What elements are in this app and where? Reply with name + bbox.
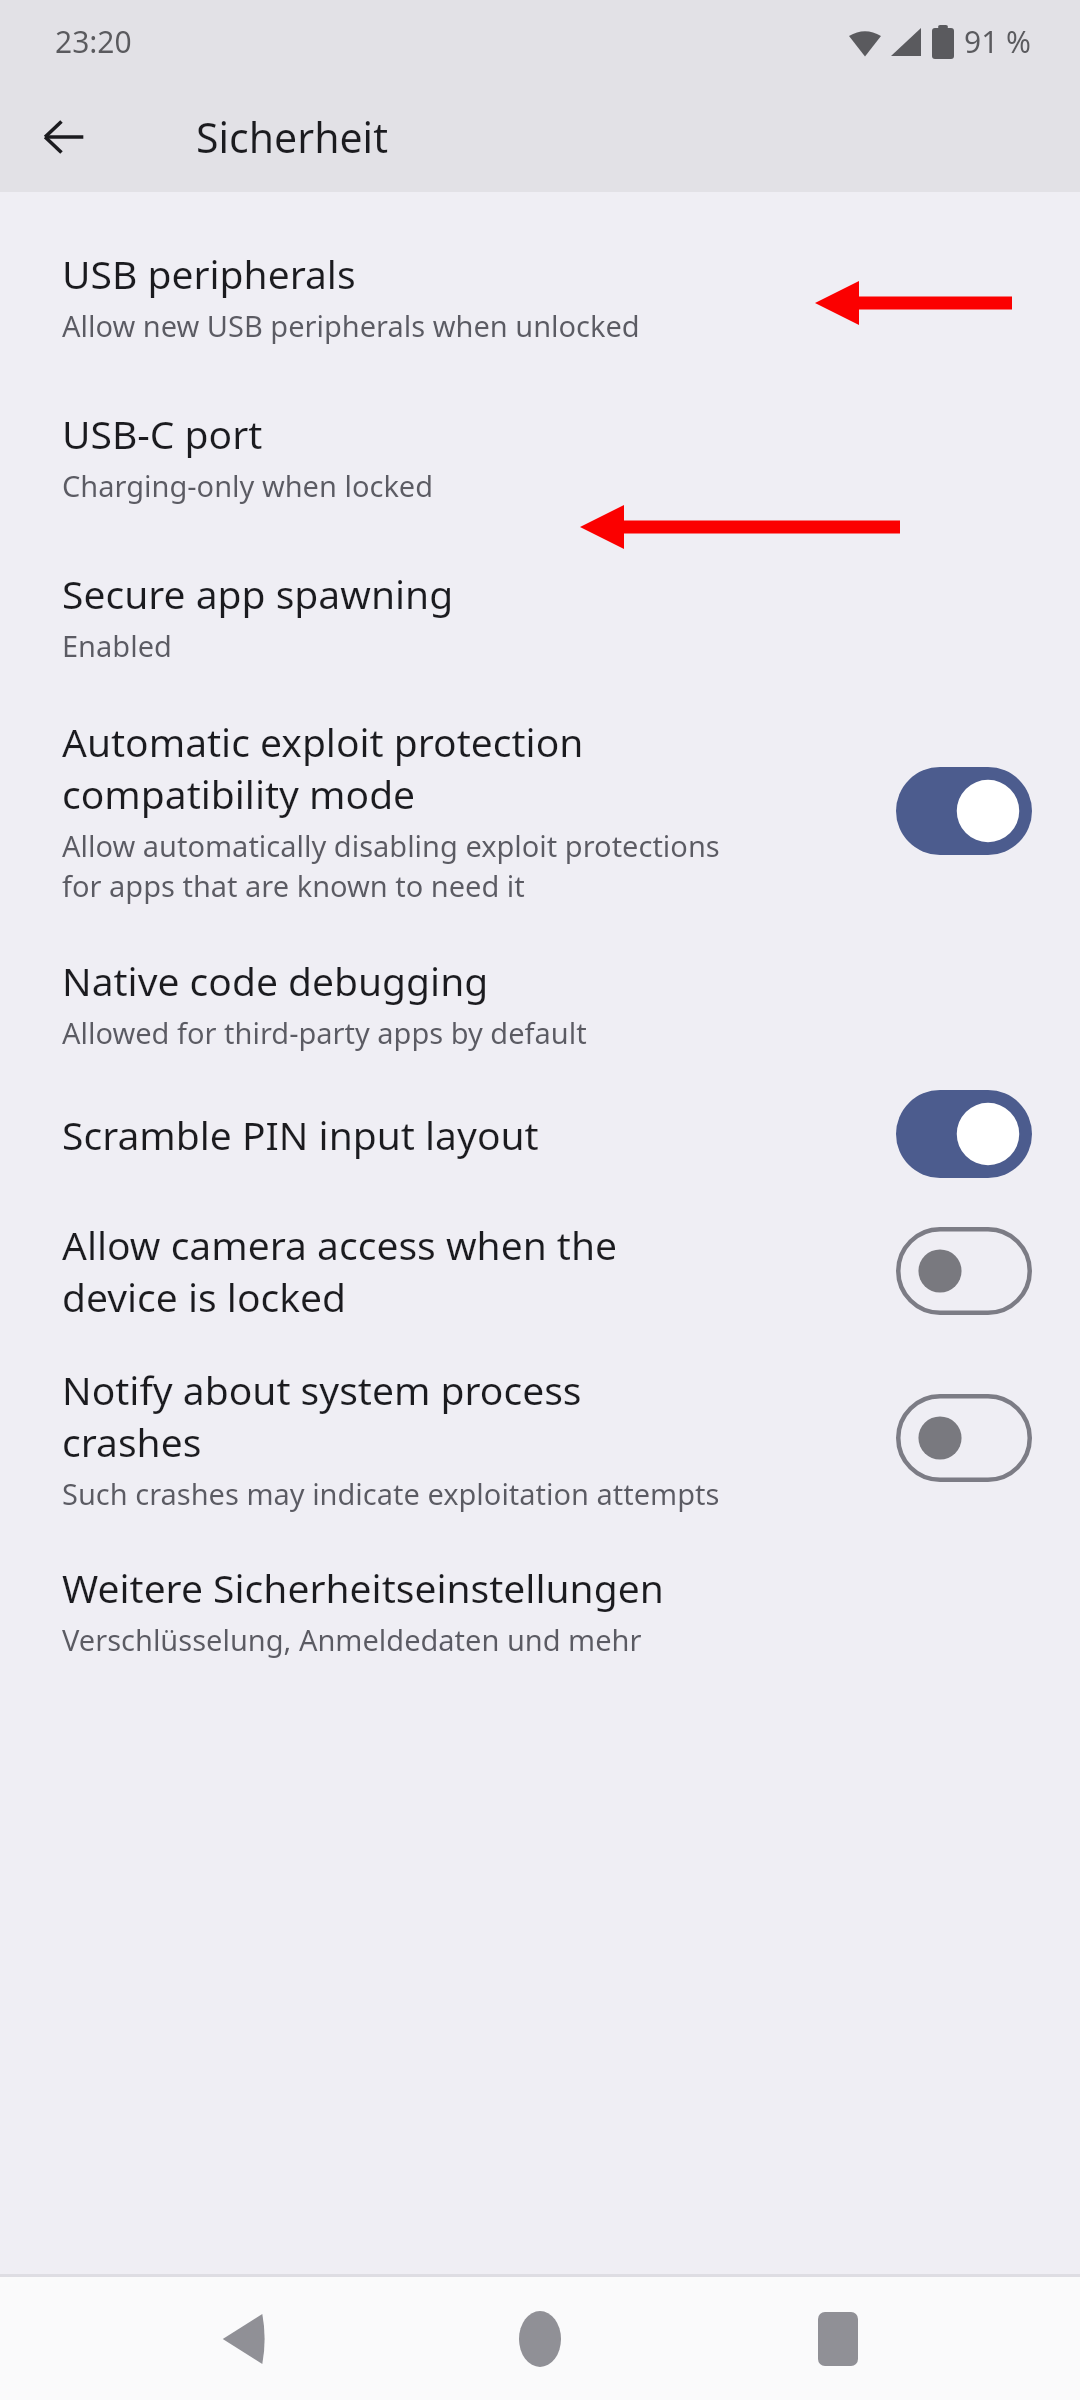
button[interactable]: Scramble PIN input layout: [0, 1052, 1080, 1178]
staticText: Allowed for third-party apps by default: [62, 1013, 587, 1052]
button[interactable]: USB-C port: [0, 345, 1080, 505]
button[interactable]: USB peripherals: [0, 192, 1080, 345]
staticText: Sicherheit: [196, 109, 389, 165]
staticText: Verschlüsselung, Anmeldedaten und mehr: [62, 1620, 642, 1659]
button[interactable]: Notify about system process crashes: [0, 1323, 1080, 1513]
staticText: Notify about system process crashes: [62, 1363, 718, 1468]
button[interactable]: Switch off: [896, 1227, 1032, 1315]
button[interactable]: Weitere Sicherheitseinstellungen: [0, 1513, 1080, 1659]
staticText: Charging-only when locked: [62, 466, 434, 505]
button[interactable]: Switch off: [896, 1394, 1032, 1482]
button[interactable]: Recent apps: [783, 2284, 893, 2394]
button[interactable]: Native code debugging: [0, 906, 1080, 1052]
staticText: Secure app spawning: [62, 567, 1032, 620]
staticText: Allow automatically disabling exploit pr…: [62, 826, 720, 906]
button[interactable]: Back: [188, 2284, 298, 2394]
staticText: Weitere Sicherheitseinstellungen: [62, 1561, 1032, 1614]
button[interactable]: Back: [26, 99, 102, 175]
button[interactable]: Secure app spawning: [0, 505, 1080, 665]
button[interactable]: Automatic exploit protection compatibili…: [0, 665, 1080, 906]
staticText: Allow new USB peripherals when unlocked: [62, 306, 640, 345]
staticText: Allow camera access when the device is l…: [62, 1218, 718, 1323]
button[interactable]: Allow camera access when the device is l…: [0, 1178, 1080, 1323]
staticText: Scramble PIN input layout: [62, 1108, 882, 1161]
staticText: Automatic exploit protection compatibili…: [62, 715, 759, 820]
staticText: Such crashes may indicate exploitation a…: [62, 1474, 720, 1513]
staticText: USB peripherals: [62, 247, 1032, 300]
staticText: 91 %: [964, 21, 1032, 62]
staticText: USB-C port: [62, 407, 1032, 460]
button[interactable]: Switch on: [896, 767, 1032, 855]
button[interactable]: Switch on: [896, 1090, 1032, 1178]
button[interactable]: Home: [485, 2284, 595, 2394]
staticText: 23:20: [55, 21, 132, 62]
staticText: Enabled: [62, 626, 172, 665]
staticText: Native code debugging: [62, 954, 1032, 1007]
